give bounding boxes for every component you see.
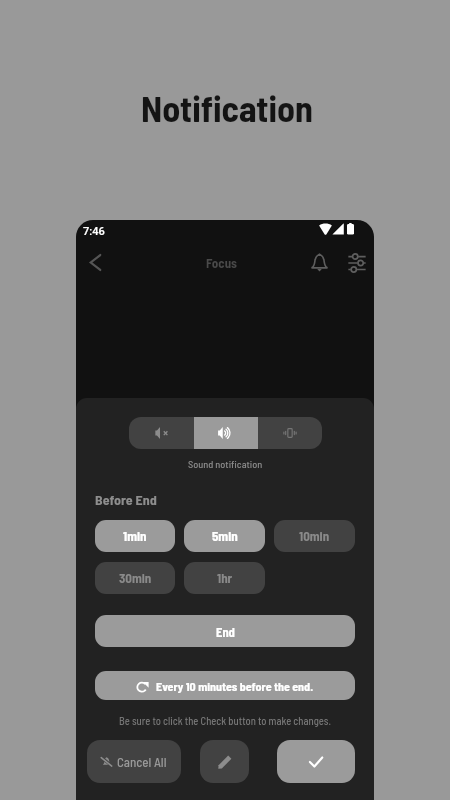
button[interactable]: 30min bbox=[95, 562, 175, 594]
staticText: Focus bbox=[206, 255, 238, 271]
staticText: 5min bbox=[212, 528, 238, 544]
staticText: Before End bbox=[95, 491, 157, 508]
staticText: 7:46 bbox=[83, 225, 105, 238]
button[interactable]: Mute bbox=[129, 417, 194, 449]
button[interactable]: 5min bbox=[184, 520, 265, 552]
staticText: End bbox=[216, 624, 235, 639]
button[interactable]: Settings bbox=[338, 244, 374, 281]
button[interactable]: 1min bbox=[95, 520, 175, 552]
button[interactable]: 1hr bbox=[184, 562, 265, 594]
button[interactable]: Notifications bbox=[300, 244, 338, 281]
staticText: Notification bbox=[141, 86, 313, 129]
button[interactable]: Confirm bbox=[277, 740, 355, 783]
staticText: Cancel All bbox=[117, 754, 167, 770]
staticText: Be sure to click the Check button to mak… bbox=[119, 714, 331, 727]
button[interactable]: Back bbox=[76, 244, 114, 281]
button[interactable]: Edit bbox=[200, 740, 249, 783]
staticText: 10min bbox=[299, 528, 330, 544]
staticText: 30min bbox=[119, 570, 152, 586]
button[interactable]: End bbox=[95, 615, 355, 647]
button[interactable]: Sound bbox=[194, 417, 258, 449]
staticText: Every 10 minutes before the end. bbox=[156, 679, 314, 693]
button[interactable]: Every 10 minutes before the end. bbox=[95, 671, 355, 700]
staticText: 1hr bbox=[217, 570, 233, 586]
button[interactable]: Vibrate bbox=[258, 417, 322, 449]
staticText: 1min bbox=[123, 528, 147, 544]
button[interactable]: 10min bbox=[274, 520, 355, 552]
button[interactable]: Cancel All bbox=[87, 740, 181, 783]
staticText: Sound notification bbox=[188, 458, 263, 470]
